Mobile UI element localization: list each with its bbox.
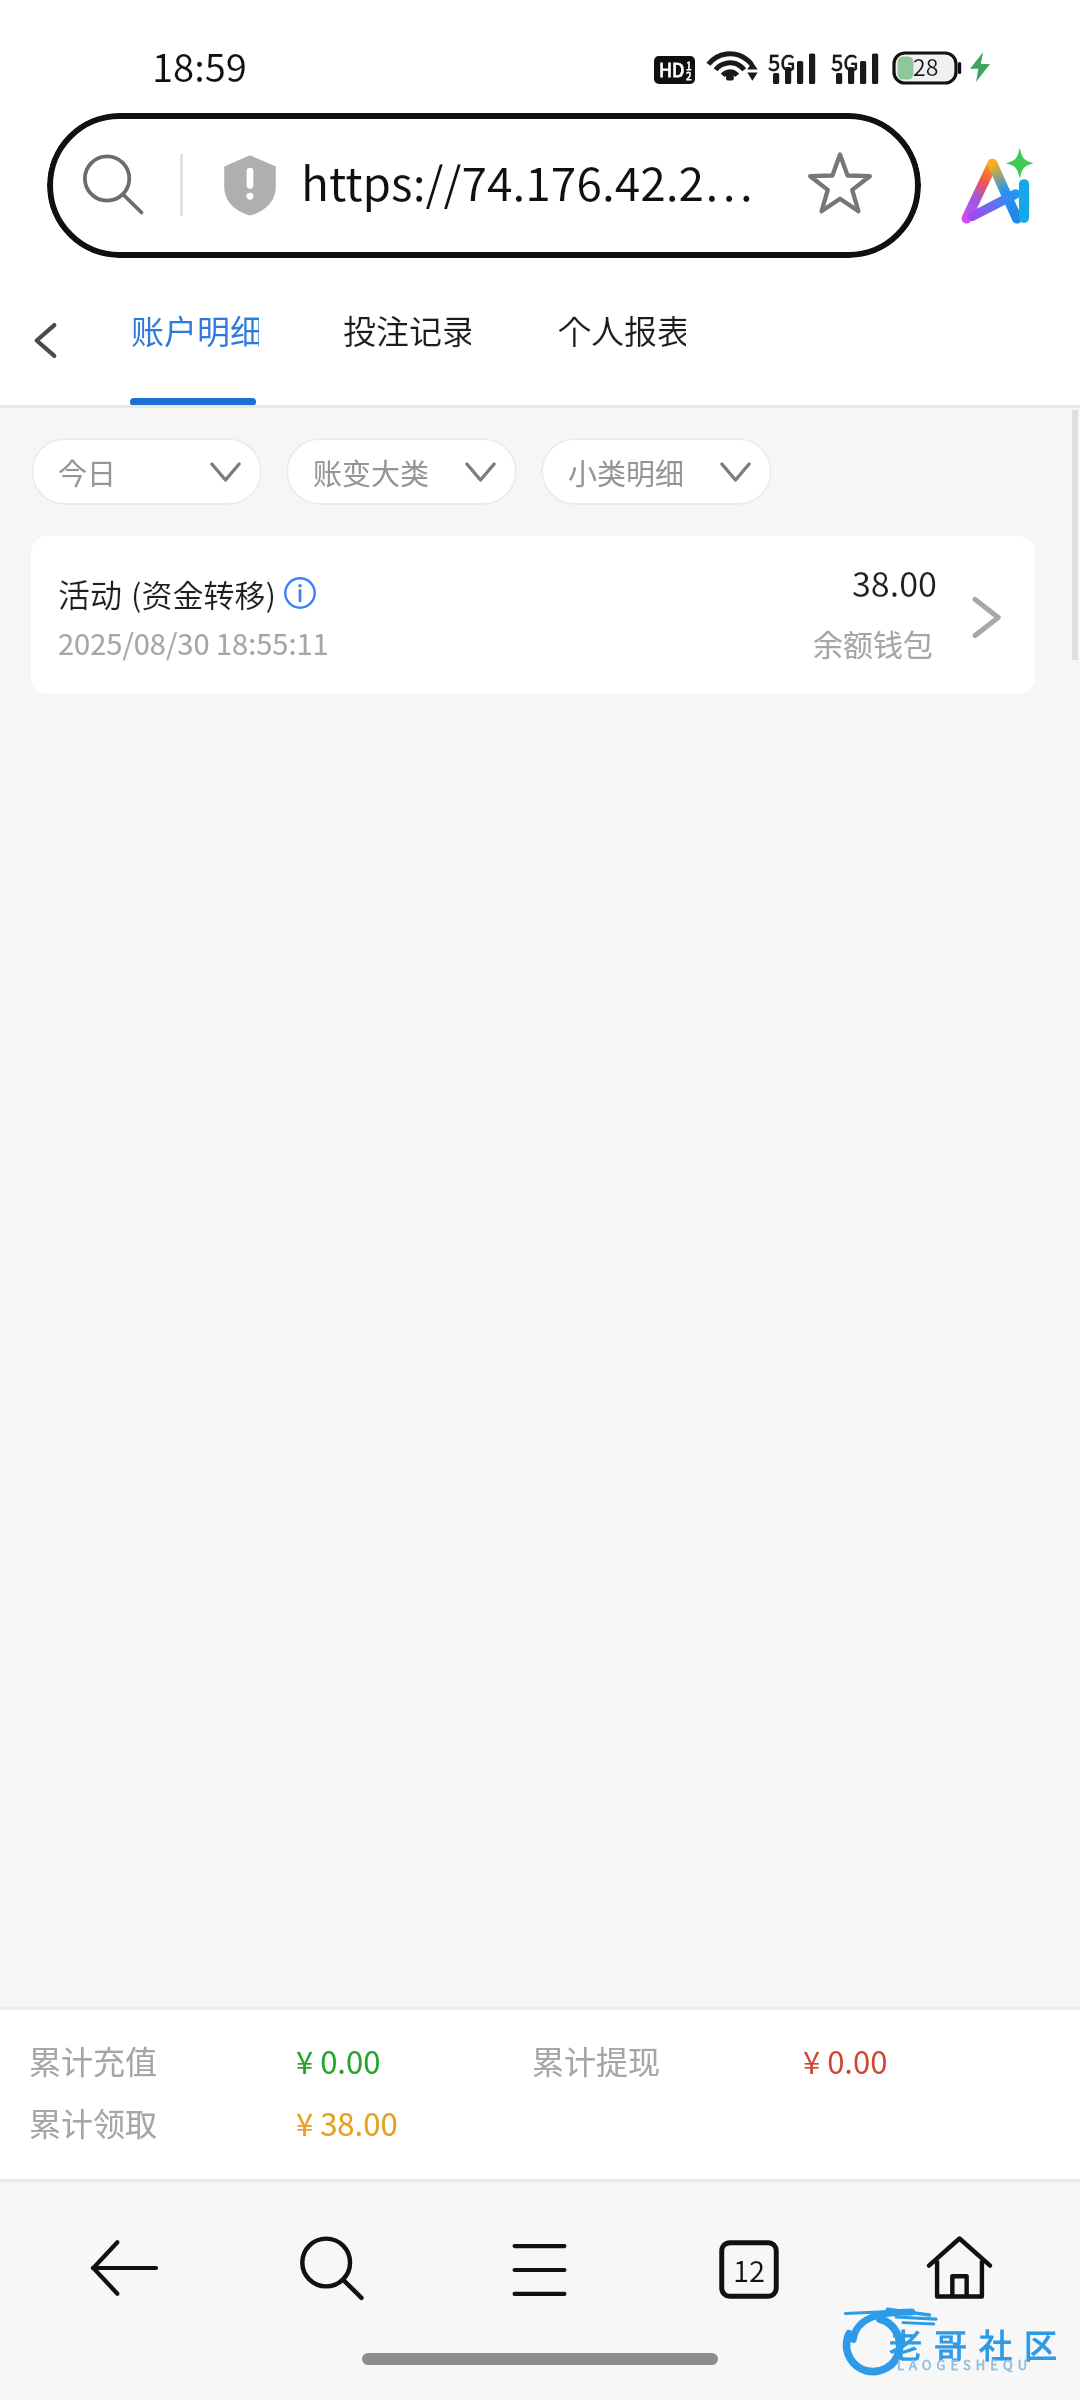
button[interactable]: Home <box>889 2196 1030 2339</box>
staticText: 1 <box>686 58 692 72</box>
button[interactable]: AI assistant <box>956 147 1036 227</box>
staticText: ¥ 0.00 <box>296 2038 381 2083</box>
button[interactable]: Back <box>0 284 92 396</box>
button[interactable]: Tabs <box>682 2201 816 2338</box>
staticText: 小类明细 <box>568 451 685 493</box>
button[interactable]: 投注记录 <box>342 306 470 406</box>
staticText: https://74.176.42.2… <box>301 148 753 215</box>
staticText: HD <box>659 56 685 82</box>
button[interactable]: 个人报表 <box>557 306 685 406</box>
other: Bookmark <box>808 151 872 215</box>
staticText: ¥ 38.00 <box>296 2100 398 2145</box>
button[interactable]: Back <box>53 2200 195 2336</box>
button[interactable]: Menu <box>475 2204 604 2336</box>
staticText: 个人报表 <box>558 306 686 354</box>
staticText: 账变大类 <box>313 451 430 493</box>
button[interactable]: 今日 <box>31 438 262 505</box>
button[interactable]: Search <box>264 2198 402 2340</box>
staticText: 2 <box>686 68 692 82</box>
staticText: 余额钱包 <box>813 621 933 664</box>
other: Search <box>83 153 145 217</box>
staticText: 老哥社区 <box>883 2320 1063 2368</box>
staticText: 38.00 <box>852 558 937 607</box>
staticText: 2025/08/30 18:55:11 <box>58 621 329 663</box>
staticText: 累计提现 <box>532 2037 661 2083</box>
staticText: LAOGESHEQU <box>897 2355 1033 2374</box>
button[interactable]: 账户明细 <box>130 306 258 406</box>
staticText: 5G <box>831 45 859 77</box>
button[interactable]: 账变大类 <box>286 438 517 505</box>
staticText: 投注记录 <box>343 306 471 354</box>
staticText: ¥ 0.00 <box>803 2038 888 2083</box>
staticText: (资金转移) <box>131 571 276 616</box>
staticText: 5G <box>768 45 796 77</box>
staticText: 账户明细 <box>131 306 259 354</box>
staticText: 累计领取 <box>29 2099 158 2145</box>
staticText: 18:59 <box>152 38 247 93</box>
staticText: 12 <box>733 2248 766 2290</box>
staticText: 累计充值 <box>29 2037 158 2083</box>
button[interactable]: 小类明细 <box>541 438 772 505</box>
button[interactable]: 活动 <box>31 536 1035 694</box>
staticText: 28 <box>913 49 939 79</box>
button[interactable]: Search <box>47 113 921 258</box>
staticText: 今日 <box>58 451 117 493</box>
staticText: 活动 <box>58 570 123 616</box>
